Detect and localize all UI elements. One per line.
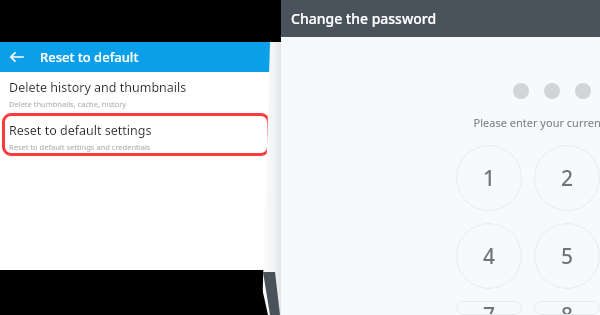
- staticText: 8: [561, 301, 574, 315]
- staticText: Reset to default settings and credential…: [9, 142, 151, 152]
- staticText: Reset to default settings: [9, 122, 152, 139]
- button[interactable]: 2: [534, 145, 600, 211]
- staticText: Delete thumbnails, cache, history: [9, 99, 127, 109]
- staticText: Change the password: [291, 9, 437, 28]
- button[interactable]: Reset to default settings: [0, 116, 272, 156]
- button[interactable]: Back: [7, 47, 27, 67]
- staticText: Please enter your current password.: [281, 115, 600, 130]
- button[interactable]: 1: [456, 145, 522, 211]
- button[interactable]: 4: [456, 223, 522, 289]
- button[interactable]: 7: [456, 301, 522, 315]
- button[interactable]: 8: [534, 301, 600, 315]
- staticText: 7: [483, 301, 496, 315]
- staticText: 1: [483, 164, 496, 193]
- staticText: 5: [561, 242, 574, 271]
- staticText: 2: [561, 164, 574, 193]
- staticText: 4: [483, 242, 496, 271]
- staticText: Delete history and thumbnails: [9, 79, 187, 96]
- button[interactable]: 5: [534, 223, 600, 289]
- staticText: Reset to default: [40, 48, 139, 66]
- button[interactable]: Delete history and thumbnails: [0, 72, 272, 113]
